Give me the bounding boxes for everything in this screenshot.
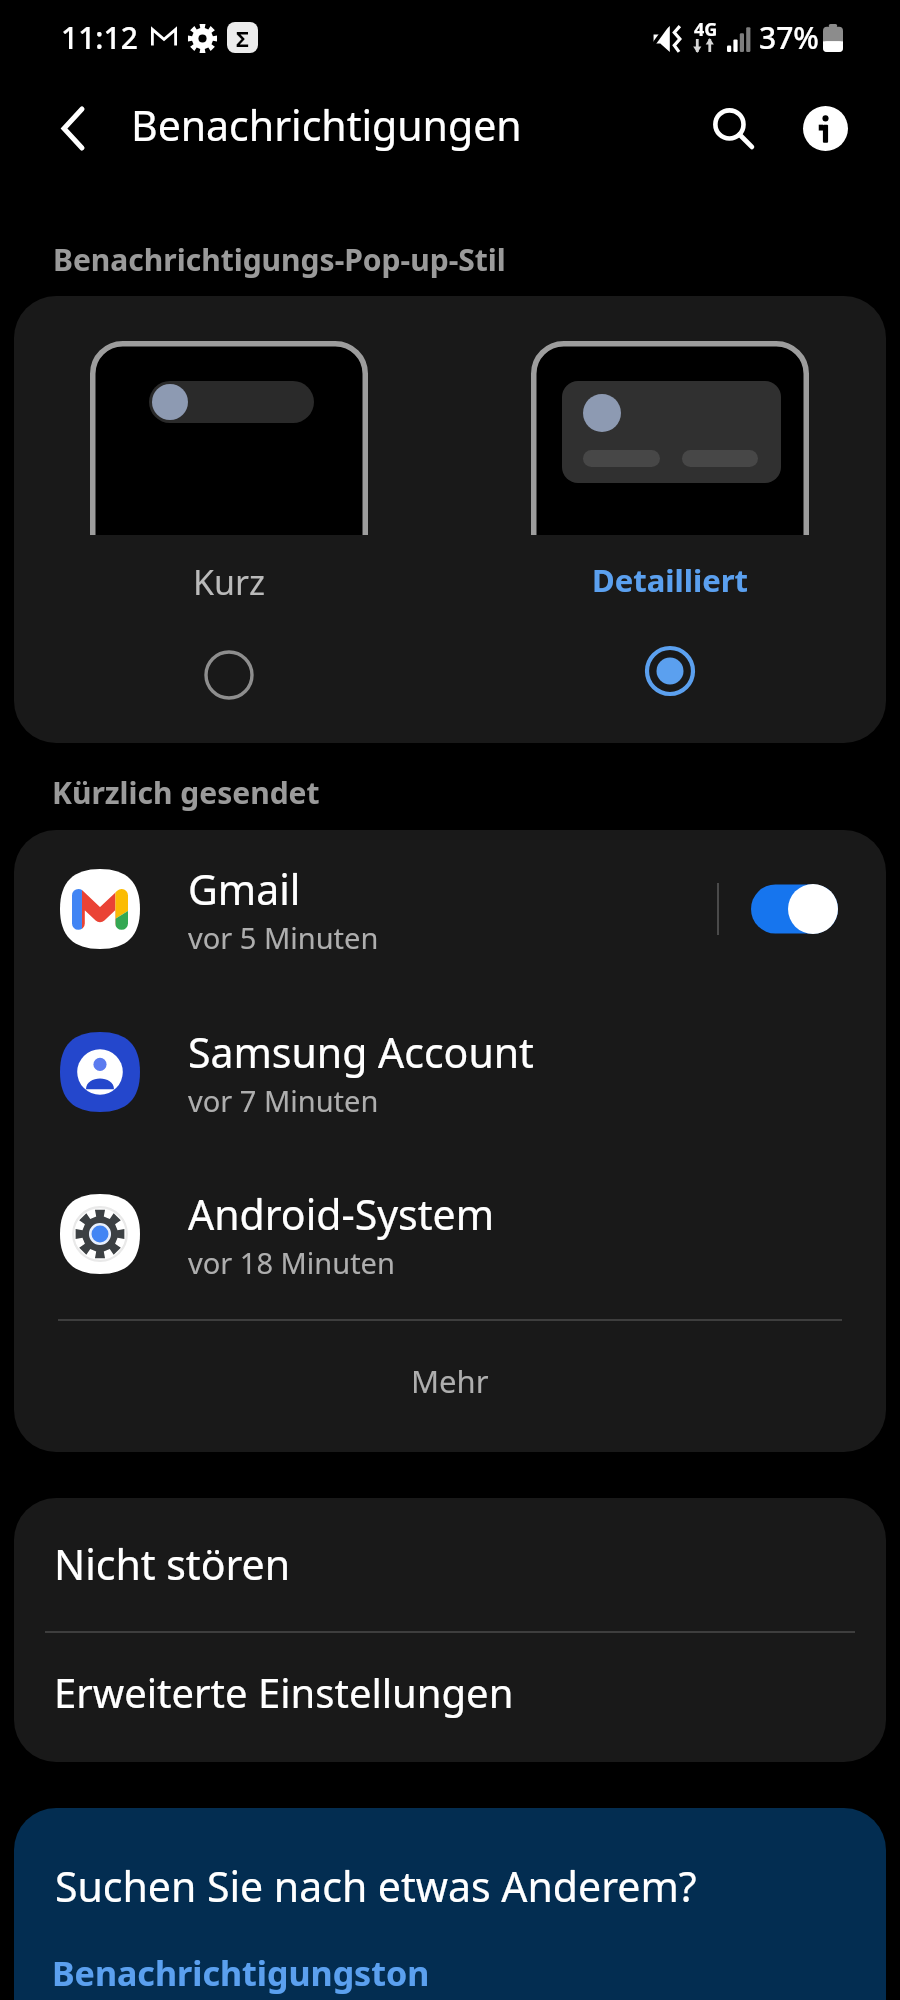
button[interactable]: Android-System xyxy=(14,1152,886,1316)
staticText: vor 5 Minuten xyxy=(188,918,379,957)
staticText: Android-System xyxy=(188,1186,494,1242)
staticText: 37% xyxy=(759,17,819,58)
button[interactable]: Samsung Account xyxy=(14,990,886,1154)
button[interactable]: Kurz xyxy=(90,296,368,700)
button[interactable]: Nicht stören xyxy=(14,1498,886,1630)
staticText: 4G xyxy=(694,17,718,42)
button[interactable]: Detailliert xyxy=(531,296,809,696)
staticText: Suchen Sie nach etwas Anderem? xyxy=(55,1858,697,1914)
button[interactable]: Erweiterte Einstellungen xyxy=(14,1626,886,1758)
staticText: Detailliert xyxy=(592,559,749,601)
staticText: Benachrichtigungen xyxy=(131,97,522,153)
staticText: vor 7 Minuten xyxy=(188,1081,379,1120)
staticText: Mehr xyxy=(411,1360,489,1402)
staticText: Nicht stören xyxy=(54,1536,291,1592)
button[interactable]: Zurück xyxy=(23,78,123,178)
staticText: 11:12 xyxy=(61,17,138,58)
staticText: Kurz xyxy=(193,559,266,605)
staticText: vor 18 Minuten xyxy=(188,1243,395,1282)
staticText: Gmail xyxy=(188,861,301,917)
staticText: Σ xyxy=(236,23,249,53)
staticText: Kürzlich gesendet xyxy=(52,772,320,813)
button[interactable]: Gmail xyxy=(14,830,886,991)
staticText: Samsung Account xyxy=(188,1024,534,1080)
staticText: Benachrichtigungs-Pop-up-Stil xyxy=(53,239,506,280)
button[interactable]: Info xyxy=(775,78,875,178)
button[interactable]: Suchen xyxy=(683,78,783,178)
staticText: Benachrichtigungston xyxy=(52,1950,430,1996)
button[interactable]: Benachrichtigungston xyxy=(52,1950,430,1996)
button[interactable]: Gmail Benachrichtigungen xyxy=(748,881,840,937)
staticText: Erweiterte Einstellungen xyxy=(54,1665,514,1719)
button[interactable]: Mehr xyxy=(14,1316,886,1446)
